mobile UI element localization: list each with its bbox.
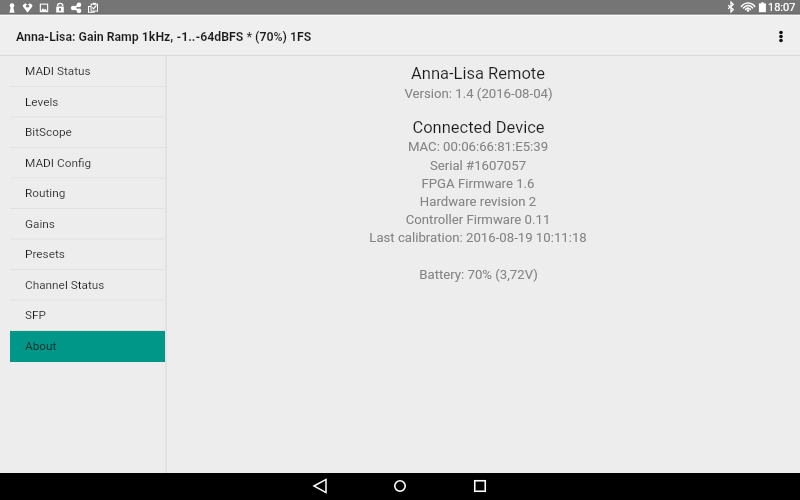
button[interactable]: More options — [762, 16, 800, 55]
button[interactable]: Routing — [0, 178, 165, 209]
staticText: Channel Status — [25, 278, 105, 292]
staticText: MADI Config — [25, 156, 92, 170]
button[interactable]: SFP — [0, 300, 165, 331]
button[interactable]: MADI Status — [0, 56, 165, 87]
staticText: Anna-Lisa: Gain Ramp 1kHz, -1..-64dBFS *… — [16, 30, 312, 44]
staticText: MAC: 00:06:66:81:E5:39 Serial #1607057 F… — [369, 139, 587, 245]
staticText: BitScope — [25, 125, 72, 139]
staticText: Presets — [25, 247, 65, 261]
staticText: Gains — [25, 217, 55, 231]
button[interactable]: Levels — [0, 87, 165, 118]
button[interactable]: Presets — [0, 239, 165, 270]
button[interactable]: Back — [280, 473, 360, 500]
staticText: Routing — [25, 186, 66, 200]
button[interactable]: Home — [360, 473, 440, 500]
staticText: Levels — [25, 95, 59, 109]
staticText: Anna-Lisa Remote — [411, 64, 545, 83]
staticText: Battery: 70% (3,72V) — [419, 267, 538, 282]
button[interactable]: MADI Config — [0, 148, 165, 179]
staticText: About — [25, 339, 57, 353]
staticText: MADI Status — [25, 64, 91, 78]
button[interactable]: Channel Status — [0, 270, 165, 301]
staticText: Connected Device — [412, 118, 545, 137]
staticText: 18:07 — [768, 1, 796, 14]
staticText: SFP — [25, 308, 46, 322]
button[interactable]: BitScope — [0, 117, 165, 148]
button[interactable]: About — [0, 331, 165, 362]
staticText: Version: 1.4 (2016-08-04) — [404, 86, 553, 101]
button[interactable]: Recent apps — [440, 473, 520, 500]
button[interactable]: Gains — [0, 209, 165, 240]
